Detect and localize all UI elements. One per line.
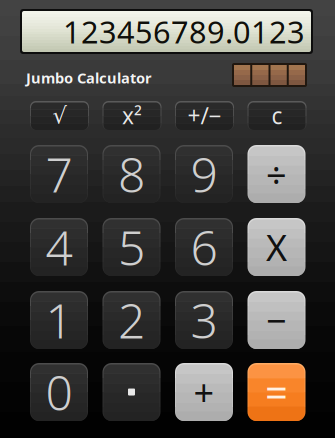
staticText: ÷ (266, 150, 287, 198)
button[interactable]: = (247, 363, 305, 421)
staticText: 3 (190, 288, 217, 352)
button[interactable]: 6 (175, 218, 233, 276)
button[interactable]: x² (102, 101, 161, 130)
button[interactable]: X (247, 218, 305, 276)
staticText: √ (52, 103, 66, 128)
button[interactable]: 3 (175, 291, 233, 349)
button[interactable]: 8 (102, 145, 160, 203)
staticText: 4 (45, 215, 72, 279)
staticText: 2 (118, 288, 145, 352)
staticText: x² (122, 100, 142, 130)
button[interactable]: Decimal point (102, 363, 160, 421)
staticText: X (266, 223, 287, 271)
staticText: c (271, 100, 282, 130)
staticText: 8 (118, 142, 145, 206)
staticText: + (193, 368, 214, 416)
button[interactable]: − (247, 291, 305, 349)
button[interactable]: 5 (102, 218, 160, 276)
button[interactable]: 7 (30, 145, 88, 203)
staticText: 5 (118, 215, 145, 279)
staticText: 1 (45, 288, 72, 352)
staticText: 123456789.0123 (63, 11, 305, 52)
staticText: 6 (190, 215, 217, 279)
button[interactable]: +/− (175, 101, 234, 130)
button[interactable]: 4 (30, 218, 88, 276)
button[interactable]: 0 (30, 363, 88, 421)
staticText: 0 (45, 360, 72, 424)
button[interactable]: c (247, 101, 306, 130)
button[interactable]: + (175, 363, 233, 421)
button[interactable]: 2 (102, 291, 160, 349)
staticText: = (265, 365, 288, 418)
button[interactable]: ÷ (247, 145, 305, 203)
staticText: − (266, 296, 287, 344)
staticText: 9 (190, 142, 217, 206)
staticText: Jumbo Calculator (26, 68, 152, 87)
staticText: 7 (45, 142, 72, 206)
staticText: +/− (187, 100, 221, 130)
button[interactable]: 9 (175, 145, 233, 203)
button[interactable]: 1 (30, 291, 88, 349)
button[interactable]: √ (30, 101, 89, 130)
